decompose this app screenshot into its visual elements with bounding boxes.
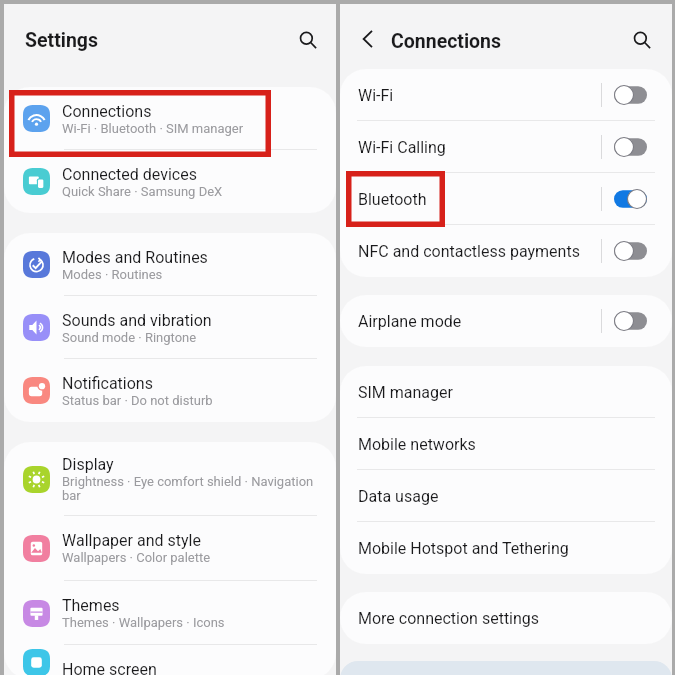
button[interactable]: Toggle off <box>614 85 647 105</box>
staticText: Themes <box>62 596 120 615</box>
button[interactable]: Sounds and vibration <box>4 296 336 359</box>
staticText: Wallpaper and style <box>62 531 201 550</box>
button[interactable]: Display <box>4 442 336 516</box>
button[interactable]: Search <box>293 25 323 55</box>
button[interactable]: Connected devices <box>4 150 336 213</box>
button[interactable]: Bluetooth <box>340 173 672 225</box>
button[interactable]: Navigate back <box>354 25 381 52</box>
button[interactable]: Wi-Fi <box>340 69 672 121</box>
staticText: Wi-Fi <box>358 86 394 105</box>
staticText: Airplane mode <box>358 312 462 331</box>
button[interactable]: Mobile networks <box>340 418 672 470</box>
staticText: Sound mode · Ringtone <box>62 330 197 345</box>
staticText: Bluetooth <box>358 190 427 209</box>
staticText: Brightness · Eye comfort shield · Naviga… <box>62 474 314 503</box>
button[interactable]: Airplane mode <box>340 295 672 347</box>
button[interactable]: Themes <box>4 581 336 645</box>
button[interactable]: Toggle off <box>614 241 647 261</box>
button[interactable]: Wallpaper and style <box>4 516 336 581</box>
button[interactable]: Notifications <box>4 359 336 422</box>
staticText: Wi-Fi Calling <box>358 138 446 157</box>
staticText: Settings <box>25 29 98 52</box>
staticText: Wi-Fi · Bluetooth · SIM manager <box>62 121 244 136</box>
staticText: Status bar · Do not disturb <box>62 393 213 408</box>
button[interactable]: Toggle off <box>614 137 647 157</box>
button[interactable]: SIM manager <box>340 366 672 418</box>
staticText: Modes and Routines <box>62 248 208 267</box>
staticText: Quick Share · Samsung DeX <box>62 184 223 199</box>
button[interactable]: Toggle off <box>614 311 647 331</box>
button[interactable]: Wi-Fi Calling <box>340 121 672 173</box>
staticText: Mobile Hotspot and Tethering <box>358 539 569 558</box>
button[interactable]: Modes and Routines <box>4 233 336 296</box>
button[interactable]: Search <box>627 25 657 55</box>
button[interactable]: Mobile Hotspot and Tethering <box>340 522 672 574</box>
button[interactable]: NFC and contactless payments <box>340 225 672 277</box>
button[interactable]: Toggle on <box>614 189 647 209</box>
button[interactable]: Data usage <box>340 470 672 522</box>
staticText: Connections <box>391 30 502 53</box>
button[interactable]: More connection settings <box>340 592 672 644</box>
staticText: Themes · Wallpapers · Icons <box>62 615 225 630</box>
staticText: Mobile networks <box>358 435 476 454</box>
staticText: SIM manager <box>358 383 453 402</box>
staticText: More connection settings <box>358 609 540 628</box>
staticText: Modes · Routines <box>62 267 163 282</box>
staticText: Connections <box>62 102 152 121</box>
staticText: Connected devices <box>62 165 197 184</box>
staticText: Wallpapers · Color palette <box>62 550 211 565</box>
button[interactable]: Home screen <box>4 645 336 675</box>
staticText: Data usage <box>358 487 439 506</box>
button[interactable]: Connections <box>4 87 336 150</box>
staticText: Sounds and vibration <box>62 311 212 330</box>
staticText: Notifications <box>62 374 153 393</box>
staticText: Display <box>62 455 114 474</box>
staticText: Home screen <box>62 660 157 675</box>
staticText: NFC and contactless payments <box>358 242 580 261</box>
